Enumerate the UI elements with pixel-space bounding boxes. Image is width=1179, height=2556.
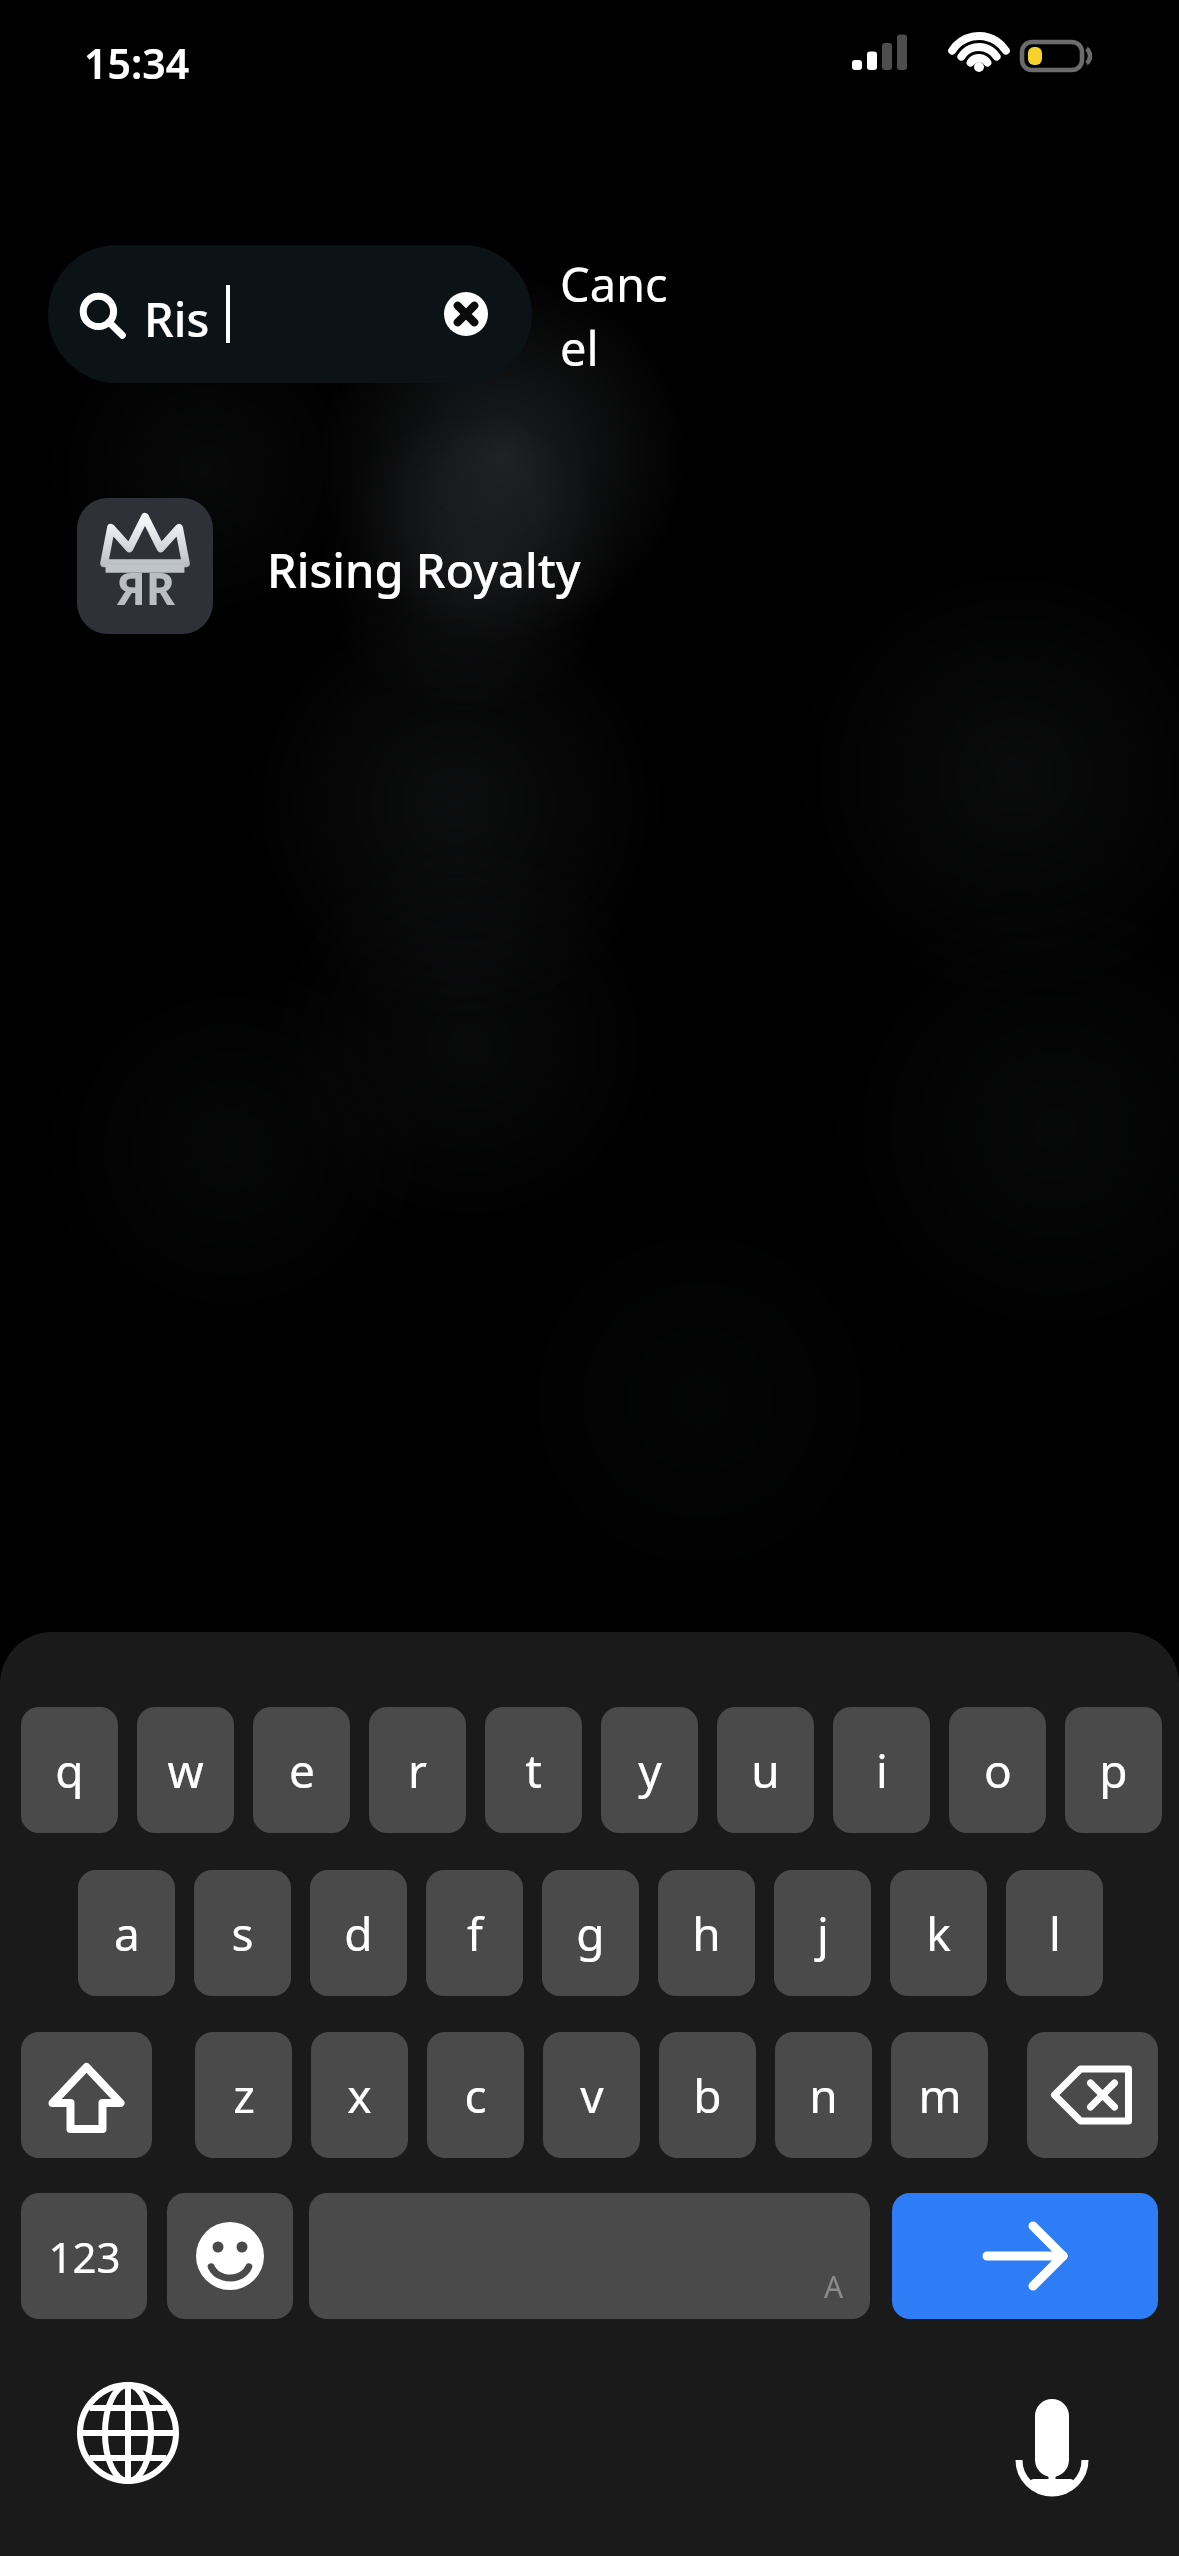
button[interactable]: Go [892,2193,1158,2319]
staticText: l [1049,1902,1061,1965]
button[interactable]: Ris [48,245,532,383]
button[interactable]: f [426,1870,523,1996]
button[interactable]: u [717,1707,814,1833]
button[interactable]: w [137,1707,234,1833]
staticText: t [525,1739,542,1802]
staticText: 123 [48,2228,121,2285]
staticText: v [580,2064,604,2127]
button[interactable]: a [78,1870,175,1996]
staticText: n [809,2064,838,2127]
button[interactable]: v [543,2032,640,2158]
staticText: A [824,2266,844,2307]
button[interactable]: h [658,1870,755,1996]
button[interactable]: i [833,1707,930,1833]
button[interactable]: Clear search [444,292,488,336]
button[interactable]: y [601,1707,698,1833]
button[interactable]: s [194,1870,291,1996]
button[interactable]: Shift [21,2032,152,2158]
staticText: r [408,1739,427,1802]
staticText: ЯR [116,558,175,618]
staticText: b [693,2064,722,2127]
button[interactable]: z [195,2032,292,2158]
button[interactable]: q [21,1707,118,1833]
staticText: k [926,1902,951,1965]
staticText: j [817,1902,829,1965]
staticText: c [464,2064,487,2127]
button[interactable]: g [542,1870,639,1996]
button[interactable]: k [890,1870,987,1996]
staticText: m [918,2064,962,2127]
button[interactable]: l [1006,1870,1103,1996]
button[interactable]: o [949,1707,1046,1833]
button[interactable]: Change keyboard language [78,2383,178,2483]
staticText: Ris [144,287,210,351]
staticText: a [114,1902,140,1965]
button[interactable]: Cancel [560,252,690,376]
button[interactable]: Emoji [167,2193,293,2319]
staticText: x [347,2064,372,2127]
staticText: u [751,1739,780,1802]
button[interactable]: d [310,1870,407,1996]
button[interactable]: j [774,1870,871,1996]
staticText: d [344,1902,373,1965]
button[interactable]: r [369,1707,466,1833]
staticText: f [467,1902,483,1965]
button[interactable]: t [485,1707,582,1833]
staticText: p [1099,1739,1128,1802]
staticText: o [984,1739,1012,1802]
staticText: w [167,1739,204,1802]
button[interactable]: c [427,2032,524,2158]
button[interactable]: Space [309,2193,870,2319]
staticText: i [876,1739,888,1802]
staticText: s [231,1902,254,1965]
button[interactable]: b [659,2032,756,2158]
staticText: 15:34 [84,35,190,91]
button[interactable]: ЯR [0,470,1179,660]
button[interactable]: Backspace [1027,2032,1158,2158]
staticText: h [692,1902,721,1965]
staticText: e [289,1739,315,1802]
button[interactable]: p [1065,1707,1162,1833]
staticText: q [55,1739,84,1802]
button[interactable]: x [311,2032,408,2158]
button[interactable]: e [253,1707,350,1833]
button[interactable]: Voice input [1002,2383,1102,2483]
button[interactable]: 123 [21,2193,147,2319]
staticText: g [576,1902,605,1965]
button[interactable]: m [891,2032,988,2158]
staticText: Rising Royalty [267,538,581,602]
staticText: y [638,1739,662,1802]
staticText: z [233,2064,255,2127]
staticText: Cancel [560,252,690,376]
button[interactable]: n [775,2032,872,2158]
